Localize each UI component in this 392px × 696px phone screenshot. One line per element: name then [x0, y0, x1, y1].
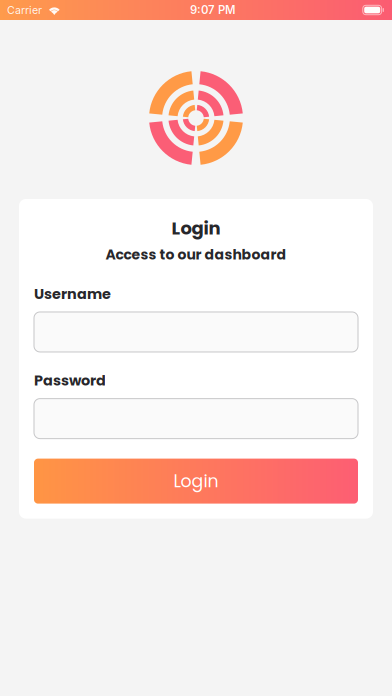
staticText: Login	[173, 469, 218, 493]
button[interactable]: Password	[34, 399, 358, 439]
staticText: 9:07 PM	[190, 3, 235, 17]
staticText: Password	[34, 370, 106, 391]
staticText: Access to our dashboard	[105, 245, 286, 264]
button[interactable]: Username	[34, 312, 358, 352]
staticText: Login	[171, 215, 220, 241]
staticText: Carrier	[7, 3, 42, 16]
button[interactable]: Login	[34, 459, 358, 504]
staticText: Username	[34, 284, 111, 304]
